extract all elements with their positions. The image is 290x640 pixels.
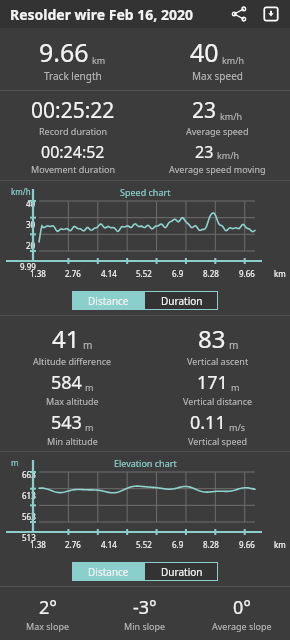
staticText: 40: [190, 35, 219, 69]
staticText: Vertical speed: [188, 435, 248, 447]
staticText: 00:25:22: [31, 96, 115, 125]
button[interactable]: 9.66: [39, 35, 106, 83]
staticText: 513: [22, 532, 36, 543]
button[interactable]: 41: [33, 322, 112, 367]
staticText: 8.28: [203, 539, 219, 550]
staticText: 9.66: [239, 539, 255, 550]
staticText: m: [231, 381, 240, 393]
staticText: m: [229, 338, 239, 352]
staticText: Movement duration: [31, 163, 115, 175]
button[interactable]: 584: [46, 370, 99, 407]
staticText: 40: [26, 198, 36, 209]
staticText: 584: [51, 370, 82, 395]
staticText: Resolder wire Feb 16, 2020: [10, 5, 193, 24]
staticText: 2.76: [65, 539, 81, 550]
button[interactable]: 0.11: [188, 410, 248, 447]
staticText: 9.66: [239, 268, 255, 279]
staticText: Min slope: [124, 620, 166, 632]
staticText: 83: [198, 322, 226, 355]
staticText: Record duration: [39, 125, 108, 137]
staticText: m: [85, 381, 94, 393]
staticText: 0.11: [190, 410, 226, 435]
staticText: km/h: [220, 110, 243, 122]
staticText: 9.99: [20, 261, 36, 272]
button[interactable]: 23: [169, 141, 266, 175]
staticText: Min altitude: [47, 435, 98, 447]
staticText: -3°: [133, 595, 157, 620]
button[interactable]: -3°: [124, 595, 166, 632]
button[interactable]: 00:25:22: [31, 96, 115, 137]
staticText: Speed chart: [120, 186, 171, 198]
staticText: 663: [22, 469, 36, 480]
button[interactable]: Duration: [145, 291, 218, 310]
staticText: 4.14: [101, 539, 117, 550]
staticText: km: [274, 539, 286, 550]
staticText: 563: [22, 511, 36, 522]
staticText: 2°: [39, 595, 57, 620]
staticText: 8.28: [203, 268, 219, 279]
staticText: 4.14: [101, 268, 117, 279]
button[interactable]: 83: [187, 322, 249, 367]
button[interactable]: Resolder wire Feb 16, 2020: [10, 5, 193, 24]
staticText: Distance: [88, 565, 129, 579]
staticText: 0°: [233, 595, 251, 620]
staticText: 9.66: [39, 35, 89, 69]
button[interactable]: 0°: [212, 595, 272, 632]
staticText: 543: [51, 410, 82, 435]
staticText: Duration: [161, 565, 203, 579]
button[interactable]: Share: [226, 1, 252, 27]
staticText: km: [274, 268, 286, 279]
button[interactable]: Duration: [145, 562, 218, 581]
staticText: Max altitude: [46, 395, 99, 407]
staticText: Max speed: [192, 69, 243, 83]
staticText: Max slope: [26, 620, 70, 632]
button[interactable]: Download: [258, 1, 284, 27]
staticText: m: [83, 338, 93, 352]
staticText: 5.52: [136, 268, 152, 279]
staticText: Elevation chart: [114, 457, 177, 469]
staticText: 1.38: [30, 268, 46, 279]
staticText: 5.52: [136, 539, 152, 550]
staticText: km/h: [222, 54, 245, 66]
staticText: m: [85, 421, 94, 433]
staticText: 613: [22, 490, 36, 501]
staticText: 23: [192, 96, 217, 125]
staticText: km/h: [11, 186, 31, 197]
staticText: Altitude difference: [33, 355, 112, 367]
staticText: 23: [195, 141, 214, 163]
staticText: Vertical ascent: [187, 355, 249, 367]
staticText: 1.38: [30, 539, 46, 550]
staticText: 30: [26, 219, 36, 230]
staticText: km: [92, 54, 106, 66]
staticText: 2.76: [65, 268, 81, 279]
staticText: 41: [52, 322, 80, 355]
button[interactable]: Distance: [72, 562, 145, 581]
button[interactable]: 00:24:52: [31, 141, 115, 175]
staticText: Duration: [161, 294, 203, 308]
button[interactable]: 171: [183, 370, 253, 407]
staticText: Average speed moving: [169, 163, 266, 175]
staticText: Track length: [44, 69, 102, 83]
button[interactable]: 23: [186, 96, 249, 137]
staticText: 171: [197, 370, 228, 395]
staticText: 20: [26, 240, 36, 251]
staticText: Average slope: [212, 620, 272, 632]
staticText: 6.9: [172, 539, 184, 550]
button[interactable]: Distance: [72, 291, 145, 310]
button[interactable]: 40: [190, 35, 245, 83]
staticText: km/h: [217, 149, 240, 161]
staticText: Average speed: [186, 125, 249, 137]
staticText: Vertical distance: [183, 395, 253, 407]
button[interactable]: 2°: [26, 595, 70, 632]
staticText: m: [11, 457, 19, 468]
staticText: m/s: [229, 421, 246, 433]
staticText: 6.9: [172, 268, 184, 279]
staticText: 00:24:52: [41, 141, 105, 163]
button[interactable]: 543: [47, 410, 98, 447]
staticText: Distance: [88, 294, 129, 308]
